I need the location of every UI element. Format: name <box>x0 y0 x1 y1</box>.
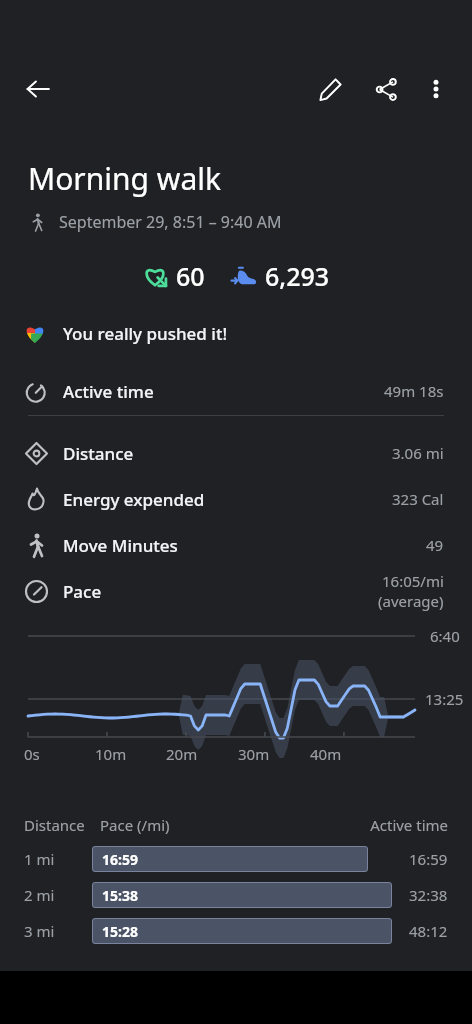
staticText: 6,293 <box>265 259 330 293</box>
staticText: Energy expended <box>63 488 205 511</box>
staticText: 15:28 <box>102 922 138 941</box>
button[interactable]: More options <box>414 67 458 111</box>
staticText: 48:12 <box>409 921 448 941</box>
button[interactable]: Energy expended <box>0 476 472 522</box>
button[interactable]: Active time <box>0 367 472 415</box>
button[interactable]: 2 mi <box>24 881 448 909</box>
staticText: Morning walk <box>28 158 221 199</box>
button[interactable]: You really pushed it! <box>0 311 472 355</box>
button[interactable]: 1 mi <box>24 845 448 873</box>
staticText: 16:59 <box>102 850 138 869</box>
button[interactable]: Share <box>362 65 410 113</box>
staticText: 3.06 mi <box>392 443 444 463</box>
staticText: (average) <box>378 591 444 611</box>
staticText: 40m <box>310 744 342 764</box>
staticText: Active time <box>370 815 448 835</box>
staticText: Move Minutes <box>63 534 178 557</box>
staticText: 13:25 <box>425 689 464 709</box>
staticText: 15:38 <box>102 886 138 905</box>
staticText: 6:40 <box>430 626 460 646</box>
button[interactable]: Pace <box>0 568 472 614</box>
staticText: Distance <box>63 442 134 465</box>
staticText: 16:59 <box>409 849 448 869</box>
staticText: 20m <box>166 744 198 764</box>
staticText: September 29, 8:51 – 9:40 AM <box>59 211 282 233</box>
staticText: 3 mi <box>24 921 92 941</box>
staticText: Pace (/mi) <box>100 815 370 835</box>
staticText: 32:38 <box>409 885 448 905</box>
button[interactable]: Distance <box>0 430 472 476</box>
staticText: 2 mi <box>24 885 92 905</box>
staticText: 10m <box>95 744 127 764</box>
staticText: 16:05/mi <box>382 571 444 591</box>
button[interactable]: 3 mi <box>24 917 448 945</box>
staticText: 49 <box>426 535 444 555</box>
staticText: 1 mi <box>24 849 92 869</box>
staticText: You really pushed it! <box>63 322 228 345</box>
staticText: Active time <box>63 380 154 403</box>
staticText: 49m 18s <box>384 381 444 401</box>
button[interactable]: Edit <box>306 65 354 113</box>
button[interactable]: Move Minutes <box>0 522 472 568</box>
button[interactable]: Back <box>14 65 62 113</box>
staticText: 323 Cal <box>392 489 444 509</box>
staticText: 60 <box>176 259 205 293</box>
staticText: Distance <box>24 815 92 835</box>
staticText: 0s <box>24 744 40 764</box>
staticText: Pace <box>63 580 102 603</box>
staticText: 30m <box>238 744 270 764</box>
